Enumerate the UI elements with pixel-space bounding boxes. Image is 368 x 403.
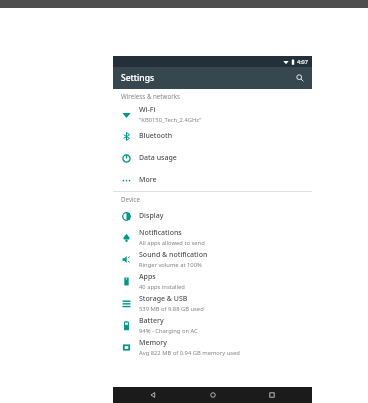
- staticText: Display: [139, 211, 164, 221]
- staticText: All apps allowed to send: [139, 239, 205, 247]
- staticText: Data usage: [139, 153, 177, 163]
- button[interactable]: Recents: [252, 387, 292, 403]
- button[interactable]: Search: [292, 70, 308, 86]
- button[interactable]: Sound & notification: [113, 248, 312, 270]
- button[interactable]: More: [113, 169, 312, 191]
- button[interactable]: Apps: [113, 270, 312, 292]
- button[interactable]: Memory: [113, 336, 312, 358]
- button[interactable]: Back: [133, 387, 173, 403]
- button[interactable]: Wi-Fi: [113, 103, 312, 125]
- staticText: Bluetooth: [139, 131, 173, 141]
- staticText: Memory: [139, 338, 168, 348]
- staticText: "KB0150_Tech_2.4GHz": [139, 116, 202, 124]
- button[interactable]: Settings: [113, 67, 312, 89]
- button[interactable]: Display: [113, 206, 312, 226]
- staticText: Device: [121, 195, 141, 203]
- staticText: Notifications: [139, 228, 182, 238]
- staticText: Battery: [139, 316, 164, 326]
- staticText: 4:07: [297, 58, 308, 65]
- staticText: 40 apps installed: [139, 283, 185, 291]
- staticText: More: [139, 175, 157, 185]
- button[interactable]: Notifications: [113, 226, 312, 248]
- staticText: Settings: [121, 72, 155, 84]
- staticText: 539 MB of 9.88 GB used: [139, 305, 204, 313]
- button[interactable]: Bluetooth: [113, 125, 312, 147]
- button[interactable]: Battery: [113, 314, 312, 336]
- button[interactable]: Home: [193, 387, 233, 403]
- staticText: Apps: [139, 272, 156, 282]
- button[interactable]: Storage & USB: [113, 292, 312, 314]
- staticText: Ringer volume at 100%: [139, 261, 202, 269]
- staticText: Sound & notification: [139, 250, 208, 260]
- button[interactable]: Data usage: [113, 147, 312, 169]
- staticText: Wi-Fi: [139, 105, 156, 115]
- staticText: 94% - Charging on AC: [139, 327, 198, 335]
- staticText: Wireless & networks: [121, 92, 181, 100]
- staticText: Avg 822 MB of 0.94 GB memory used: [139, 349, 240, 357]
- staticText: Storage & USB: [139, 294, 188, 304]
